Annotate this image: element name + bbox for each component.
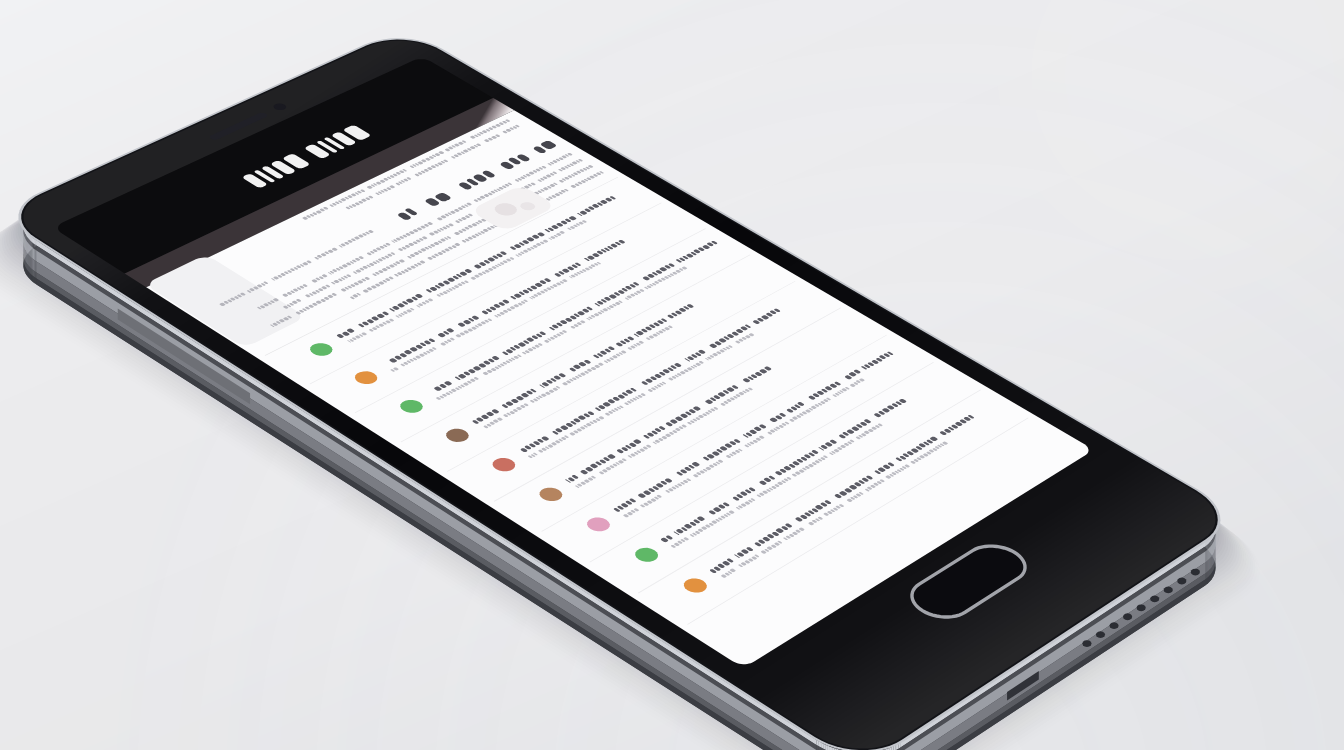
button[interactable]: List item 5 (447, 330, 777, 380)
button[interactable]: Home (899, 541, 1039, 621)
button[interactable]: List item 2 (313, 248, 643, 298)
button[interactable]: List item 1 (269, 221, 599, 271)
button[interactable]: List item 8 (587, 415, 917, 465)
button[interactable]: Hello World toolbar (181, 130, 421, 190)
button[interactable]: List item 3 (357, 275, 687, 325)
button[interactable]: List item 4 (402, 302, 732, 352)
button[interactable]: Status icons (67, 177, 157, 211)
button[interactable]: List item 6 (493, 358, 823, 408)
button[interactable]: List item 9 (635, 444, 965, 494)
button[interactable]: List item 7 (540, 386, 870, 436)
